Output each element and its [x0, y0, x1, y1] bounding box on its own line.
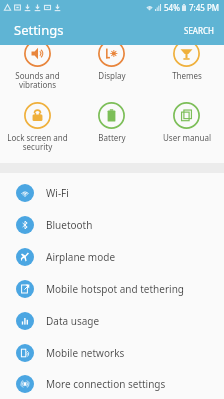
staticText: SEARCH	[184, 25, 214, 36]
button[interactable]: Data usage	[0, 305, 224, 337]
staticText: User manual	[163, 132, 211, 143]
button[interactable]: Display	[74, 45, 149, 81]
button[interactable]: Sounds and vibrations	[0, 45, 74, 91]
button[interactable]: Lock screen and security	[0, 102, 74, 153]
button[interactable]: Mobile hotspot and tethering	[0, 273, 224, 305]
staticText: More connection settings	[46, 377, 166, 391]
staticText: Mobile networks	[46, 346, 125, 360]
staticText: 7:45 PM	[189, 2, 220, 13]
button[interactable]: Mobile networks	[0, 337, 224, 369]
button[interactable]: Airplane mode	[0, 241, 224, 273]
button[interactable]: Bluetooth	[0, 209, 224, 241]
staticText: Data usage	[46, 314, 100, 328]
staticText: Wi-Fi	[46, 186, 69, 200]
staticText: Lock screen and security	[7, 132, 68, 153]
staticText: Mobile hotspot and tethering	[46, 282, 184, 296]
staticText: Display	[98, 70, 126, 81]
staticText: Airplane mode	[46, 250, 116, 264]
button[interactable]: Themes	[149, 45, 224, 81]
staticText: Sounds and vibrations	[15, 70, 60, 91]
button[interactable]: More connection settings	[0, 369, 224, 399]
button[interactable]: Wi-Fi	[0, 177, 224, 209]
staticText: Settings	[14, 21, 64, 39]
button[interactable]: SEARCH	[174, 18, 224, 43]
button[interactable]: Battery	[74, 102, 149, 143]
staticText: 54%	[164, 2, 180, 13]
staticText: Bluetooth	[46, 218, 93, 232]
staticText: Themes	[172, 70, 202, 81]
button[interactable]: User manual	[149, 102, 224, 143]
staticText: Battery	[98, 132, 126, 143]
